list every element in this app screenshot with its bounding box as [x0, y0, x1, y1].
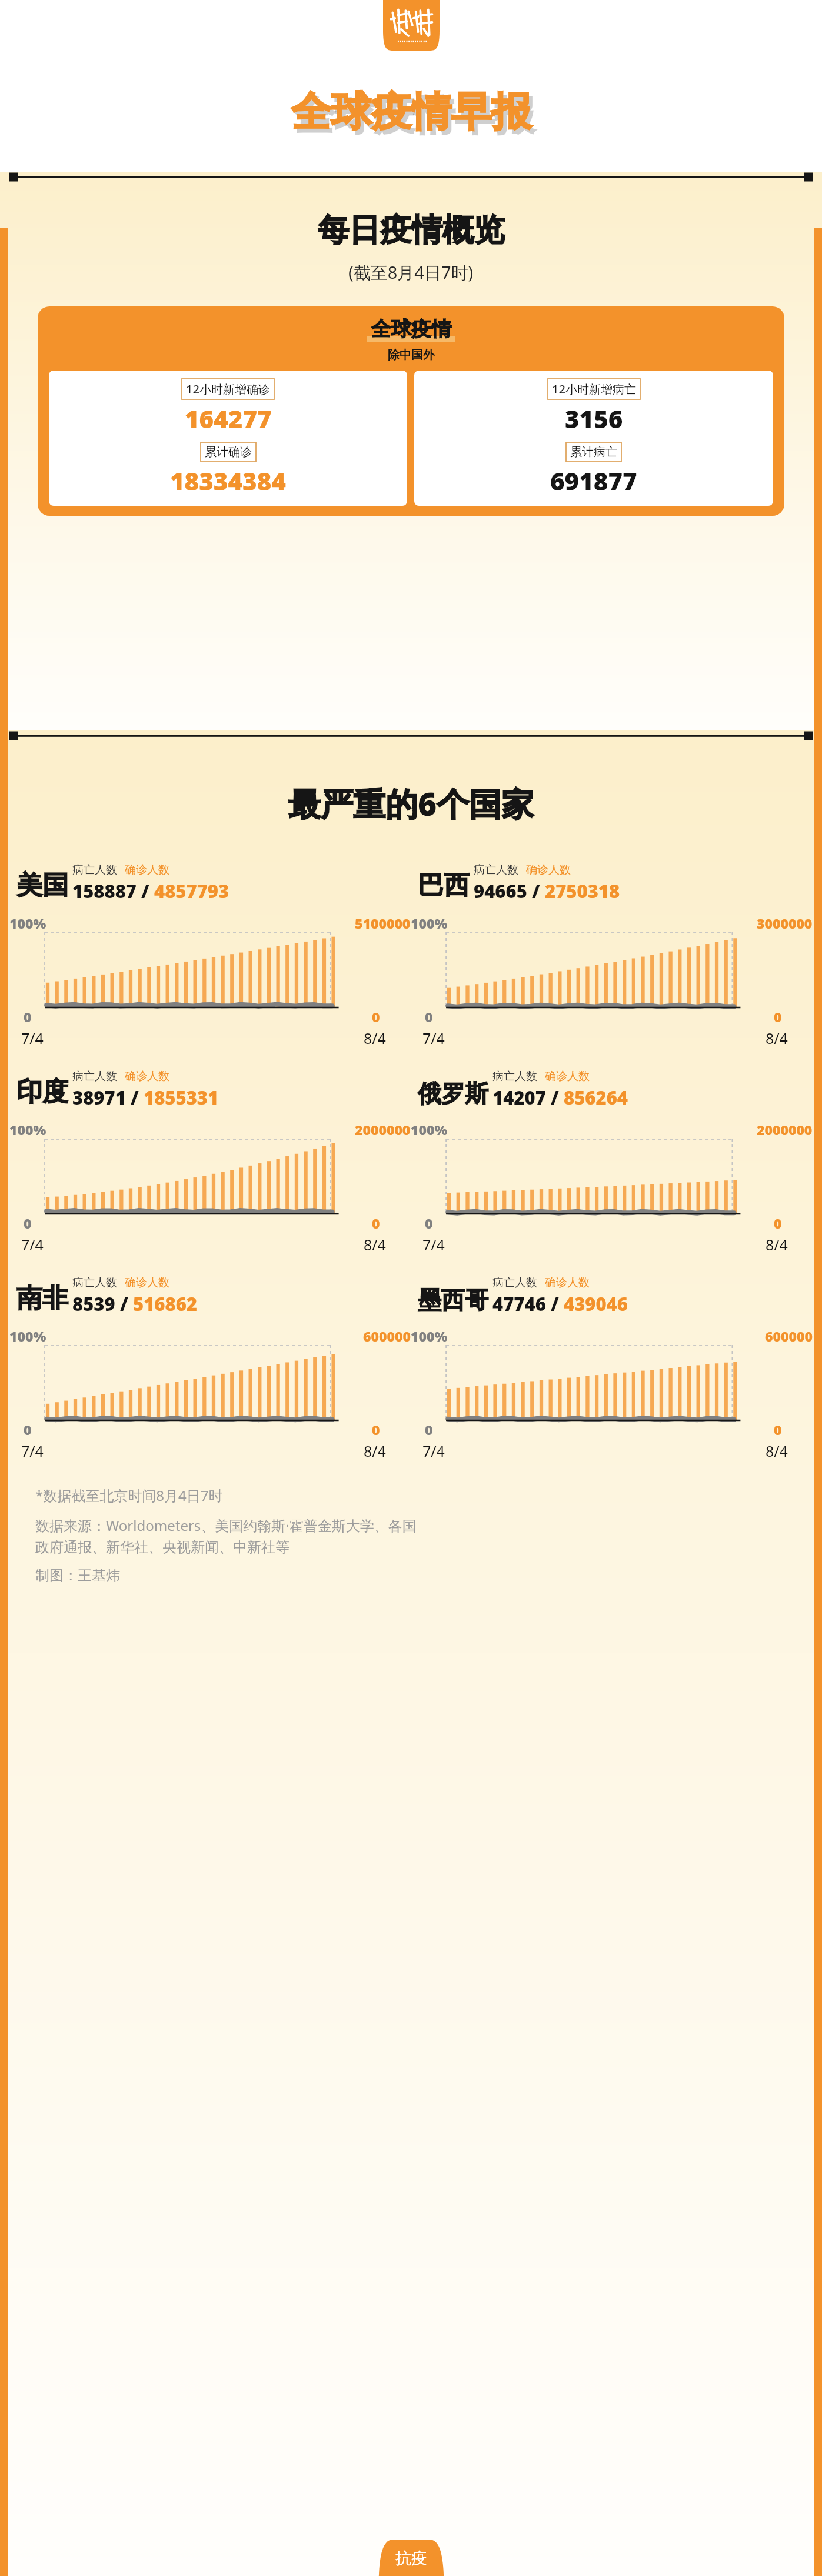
button[interactable]: 12小时新增病亡: [414, 371, 773, 506]
staticText: 除中国外: [388, 348, 435, 362]
staticText: 856264: [564, 1085, 628, 1110]
staticText: 美国: [16, 869, 68, 902]
staticText: 4857793: [154, 879, 229, 903]
staticText: 600000: [765, 1327, 813, 1345]
staticText: 病亡人数: [72, 1276, 117, 1290]
staticText: 8539: [72, 1292, 115, 1316]
staticText: /: [546, 1292, 564, 1316]
staticText: 3000000: [757, 914, 813, 932]
button[interactable]: The Paper logo: [383, 0, 440, 51]
staticText: 俄罗斯: [418, 1079, 488, 1108]
button[interactable]: 12小时新增确诊: [49, 371, 407, 506]
staticText: 0: [372, 1420, 380, 1439]
staticText: 病亡人数: [492, 1069, 537, 1083]
staticText: 38971: [72, 1085, 126, 1110]
staticText: 确诊人数: [125, 1069, 169, 1083]
staticText: 全球疫情早报: [291, 87, 531, 138]
staticText: /: [527, 879, 545, 903]
staticText: 病亡人数: [474, 863, 518, 877]
staticText: 7/4: [21, 1028, 44, 1048]
button[interactable]: 南非: [9, 1276, 411, 1461]
staticText: 18334384: [170, 464, 286, 498]
staticText: 14207: [492, 1085, 546, 1110]
staticText: 94665: [474, 879, 527, 903]
staticText: 0: [372, 1214, 380, 1232]
staticText: 8/4: [364, 1234, 386, 1254]
staticText: 7/4: [422, 1234, 445, 1254]
staticText: 病亡人数: [72, 863, 117, 877]
staticText: 600000: [363, 1327, 411, 1345]
staticText: 制图：王基炜: [35, 1567, 120, 1584]
button[interactable]: 俄罗斯: [411, 1069, 813, 1254]
staticText: 0: [774, 1007, 782, 1026]
staticText: 2000000: [757, 1120, 813, 1139]
staticText: 0: [425, 1007, 433, 1026]
button[interactable]: 巴西: [411, 863, 813, 1048]
staticText: 100%: [9, 1120, 46, 1139]
staticText: 病亡人数: [72, 1069, 117, 1083]
staticText: 最严重的6个国家: [288, 781, 534, 825]
staticText: 8/4: [766, 1234, 788, 1254]
staticText: 1855331: [144, 1085, 219, 1110]
staticText: /: [546, 1085, 564, 1110]
staticText: 8/4: [766, 1028, 788, 1048]
staticText: 439046: [564, 1292, 628, 1316]
staticText: 2750318: [545, 879, 620, 903]
button[interactable]: 印度: [9, 1069, 411, 1254]
button[interactable]: 抗疫 tag: [378, 2540, 444, 2576]
button[interactable]: 墨西哥: [411, 1276, 813, 1461]
staticText: 0: [774, 1420, 782, 1439]
staticText: /: [126, 1085, 144, 1110]
staticText: 累计病亡: [570, 445, 617, 459]
staticText: 7/4: [422, 1028, 445, 1048]
staticText: 0: [372, 1007, 380, 1026]
staticText: /: [137, 879, 154, 903]
staticText: 确诊人数: [125, 863, 169, 877]
staticText: 政府通报、新华社、央视新闻、中新社等: [35, 1539, 289, 1556]
staticText: 确诊人数: [545, 1069, 590, 1083]
staticText: 全球疫情: [371, 316, 451, 342]
staticText: 12小时新增病亡: [552, 381, 636, 397]
staticText: 巴西: [418, 869, 470, 902]
staticText: 7/4: [21, 1441, 44, 1461]
staticText: 印度: [16, 1076, 68, 1108]
staticText: 0: [425, 1420, 433, 1439]
staticText: 数据来源：Worldometers、美国约翰斯·霍普金斯大学、各国: [35, 1516, 417, 1535]
staticText: 累计确诊: [205, 445, 252, 459]
staticText: 8/4: [364, 1028, 386, 1048]
staticText: 7/4: [422, 1441, 445, 1461]
staticText: 100%: [411, 914, 448, 932]
staticText: 0: [24, 1420, 32, 1439]
staticText: 691877: [550, 464, 637, 498]
staticText: 3156: [565, 402, 623, 435]
staticText: 2000000: [355, 1120, 411, 1139]
staticText: 确诊人数: [526, 863, 571, 877]
staticText: 每日疫情概览: [318, 211, 505, 250]
staticText: 0: [24, 1214, 32, 1232]
staticText: 0: [24, 1007, 32, 1026]
staticText: 确诊人数: [125, 1276, 169, 1290]
staticText: (截至8月4日7时): [348, 261, 474, 284]
staticText: 164277: [185, 402, 272, 435]
staticText: 抗疫: [395, 2548, 427, 2568]
button[interactable]: 全球疫情: [38, 306, 784, 516]
staticText: 5100000: [355, 914, 411, 932]
staticText: *数据截至北京时间8月4日7时: [35, 1486, 223, 1505]
staticText: 100%: [411, 1120, 448, 1139]
staticText: 0: [425, 1214, 433, 1232]
staticText: 7/4: [21, 1234, 44, 1254]
staticText: 516862: [133, 1292, 197, 1316]
staticText: 墨西哥: [418, 1285, 488, 1314]
staticText: 12小时新增确诊: [186, 381, 270, 397]
staticText: 南非: [16, 1282, 68, 1314]
staticText: 8/4: [364, 1441, 386, 1461]
staticText: 100%: [411, 1327, 448, 1345]
staticText: 100%: [9, 914, 46, 932]
staticText: 47746: [492, 1292, 546, 1316]
button[interactable]: 美国: [9, 863, 411, 1048]
staticText: 确诊人数: [545, 1276, 590, 1290]
staticText: 100%: [9, 1327, 46, 1345]
staticText: 全球疫情早报: [295, 91, 535, 142]
staticText: 8/4: [766, 1441, 788, 1461]
staticText: 病亡人数: [492, 1276, 537, 1290]
